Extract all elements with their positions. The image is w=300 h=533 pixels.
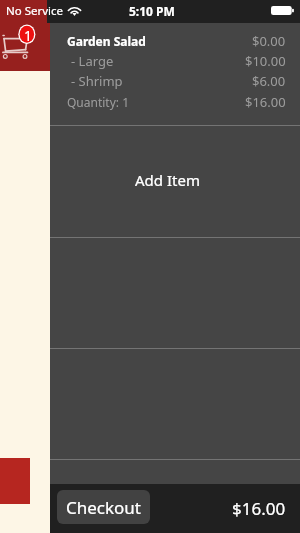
button[interactable]: Garden Salad <box>50 23 300 125</box>
staticText: 1 <box>24 26 33 45</box>
staticText: $0.00 <box>252 32 286 50</box>
button[interactable]: Checkout <box>57 490 150 524</box>
staticText: Add Item <box>135 170 200 190</box>
staticText: $16.00 <box>245 93 286 111</box>
button[interactable]: Cart <box>0 0 50 71</box>
staticText: $10.00 <box>245 52 286 70</box>
staticText: No Service <box>6 3 64 19</box>
staticText: $16.00 <box>232 497 286 520</box>
staticText: Quantity: 1 <box>67 94 130 110</box>
button[interactable]: Add Item <box>50 126 300 237</box>
staticText: - Shrimp <box>71 72 123 90</box>
staticText: Garden Salad <box>67 33 146 49</box>
staticText: 5:10 PM <box>129 3 175 19</box>
staticText: $6.00 <box>252 72 286 90</box>
staticText: Checkout <box>66 496 142 519</box>
staticText: - Large <box>71 52 114 70</box>
